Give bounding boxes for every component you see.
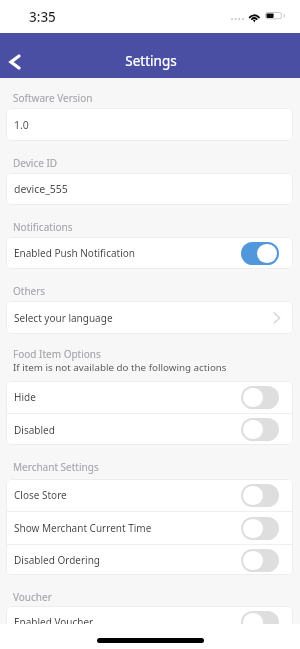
button[interactable]: Enabled Voucher [241, 611, 279, 624]
staticText: 3:35 [29, 8, 56, 26]
staticText: Show Merchant Current Time [14, 521, 152, 535]
staticText: Enabled Voucher [14, 615, 94, 624]
button[interactable]: Select your language [6, 301, 293, 334]
button[interactable]: Show Merchant Current Time [6, 512, 293, 544]
staticText: Hide [14, 390, 36, 404]
staticText: 1.0 [14, 118, 29, 132]
button[interactable]: Back [0, 39, 32, 71]
staticText: Disabled Ordering [14, 553, 100, 567]
staticText: If item is not available do the followin… [13, 361, 227, 374]
staticText: Notifications [13, 220, 73, 234]
staticText: Disabled [14, 423, 55, 437]
button[interactable]: 1.0 [6, 108, 293, 141]
button[interactable]: Enabled Push Notification [6, 237, 293, 269]
staticText: Close Store [14, 488, 67, 502]
staticText: Voucher [13, 590, 52, 604]
button[interactable]: Enabled Voucher [6, 606, 293, 624]
button[interactable]: Disabled [6, 414, 293, 445]
button[interactable]: Close Store [241, 484, 279, 507]
staticText: Merchant Settings [13, 460, 99, 474]
staticText: Food Item Options [13, 347, 101, 361]
button[interactable]: Disabled Ordering [6, 545, 293, 575]
button[interactable]: Disabled Ordering [241, 549, 279, 572]
button[interactable]: Enabled Push Notification [241, 242, 279, 265]
button[interactable]: Hide [241, 386, 279, 409]
button[interactable]: Disabled [241, 418, 279, 441]
staticText: Device ID [13, 156, 58, 170]
button[interactable]: Show Merchant Current Time [241, 517, 279, 540]
button[interactable]: Hide [6, 381, 293, 413]
button[interactable]: device_555 [6, 173, 293, 205]
staticText: device_555 [14, 182, 68, 196]
staticText: Settings [125, 52, 177, 70]
staticText: Enabled Push Notification [14, 246, 135, 260]
staticText: Software Version [13, 91, 93, 105]
button[interactable]: Close Store [6, 479, 293, 511]
staticText: Select your language [14, 311, 113, 325]
staticText: Others [13, 284, 46, 298]
